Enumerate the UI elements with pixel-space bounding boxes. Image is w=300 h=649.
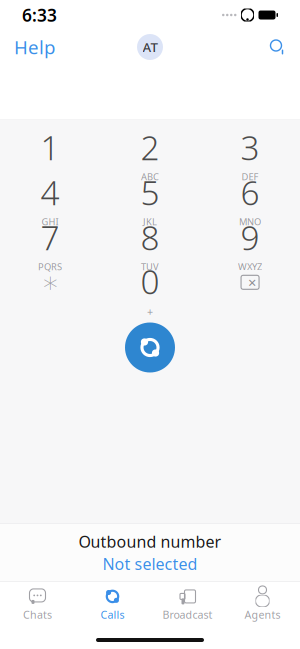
- button[interactable]: Help: [0, 27, 69, 67]
- staticText: Not selected: [102, 553, 197, 574]
- button[interactable]: 4: [0, 176, 100, 221]
- button[interactable]: Delete: [200, 266, 300, 311]
- staticText: DEF: [241, 170, 258, 183]
- staticText: JKL: [143, 215, 157, 228]
- staticText: Chats: [23, 607, 52, 622]
- button[interactable]: 8: [100, 221, 200, 266]
- button[interactable]: Account AT: [137, 34, 163, 60]
- staticText: +: [147, 304, 153, 319]
- staticText: 3: [240, 125, 259, 169]
- button[interactable]: Calls: [75, 582, 150, 627]
- staticText: ∗: [41, 266, 59, 299]
- button[interactable]: 5: [100, 176, 200, 221]
- button[interactable]: 0: [100, 266, 200, 311]
- staticText: Outbound number: [78, 531, 221, 552]
- staticText: 8: [140, 215, 159, 259]
- staticText: GHI: [41, 215, 58, 228]
- button[interactable]: 3: [200, 131, 300, 176]
- button[interactable]: 9: [200, 221, 300, 266]
- button[interactable]: 7: [0, 221, 100, 266]
- button[interactable]: 6: [200, 176, 300, 221]
- staticText: AT: [142, 38, 157, 56]
- button[interactable]: Call: [120, 317, 180, 377]
- staticText: 0: [140, 259, 159, 304]
- staticText: TUV: [141, 260, 159, 273]
- button[interactable]: 2: [100, 131, 200, 176]
- staticText: 5: [140, 170, 159, 214]
- button[interactable]: Chats: [0, 582, 75, 627]
- staticText: PQRS: [38, 260, 62, 273]
- button[interactable]: Broadcast: [150, 582, 225, 627]
- button[interactable]: 1: [0, 131, 100, 176]
- staticText: 9: [240, 215, 259, 259]
- staticText: ABC: [141, 170, 159, 183]
- button[interactable]: Search: [255, 30, 300, 63]
- button[interactable]: Not selected: [102, 553, 197, 574]
- staticText: 6:33: [22, 3, 57, 26]
- staticText: 4: [40, 170, 59, 214]
- staticText: ×: [248, 273, 256, 292]
- staticText: Agents: [244, 607, 280, 622]
- staticText: Calls: [100, 607, 124, 622]
- staticText: MNO: [239, 215, 261, 228]
- staticText: 1: [40, 125, 59, 169]
- staticText: Help: [14, 35, 55, 59]
- staticText: Broadcast: [162, 607, 212, 622]
- button[interactable]: Star: [0, 266, 100, 311]
- staticText: 6: [240, 170, 259, 214]
- staticText: 7: [40, 215, 59, 259]
- staticText: 2: [140, 125, 159, 169]
- staticText: WXYZ: [238, 260, 262, 273]
- button[interactable]: Agents: [225, 582, 300, 627]
